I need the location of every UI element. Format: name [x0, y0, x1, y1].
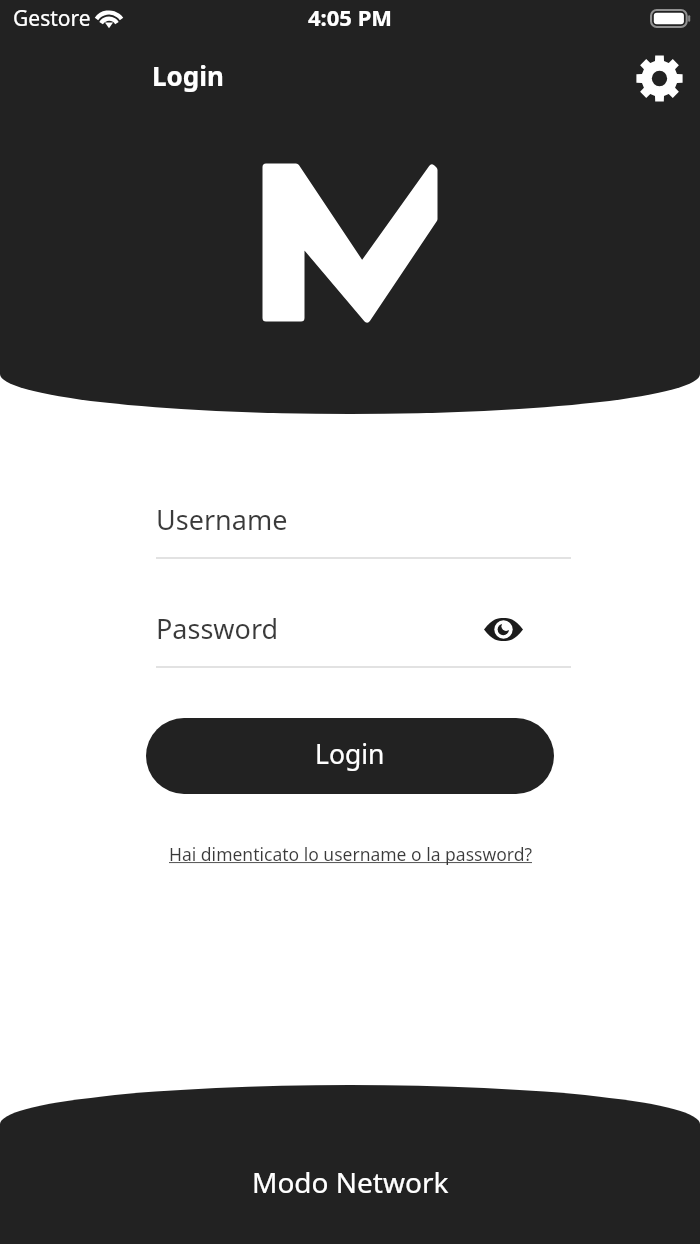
button[interactable]: Login	[146, 718, 554, 794]
button[interactable]: Show password	[480, 608, 526, 650]
button[interactable]: Username	[156, 500, 571, 559]
staticText: Hai dimenticato lo username o la passwor…	[169, 842, 532, 866]
staticText: Gestore	[13, 4, 91, 33]
staticText: 4:05 PM	[308, 2, 393, 32]
button[interactable]: Settings	[629, 48, 689, 108]
staticText: Login	[315, 736, 385, 772]
staticText: Login	[152, 58, 224, 93]
staticText: Username	[156, 501, 288, 538]
button[interactable]: Modo Network	[0, 1134, 700, 1244]
staticText: Modo Network	[252, 1163, 449, 1201]
button[interactable]: Password	[156, 609, 571, 668]
staticText: Password	[156, 610, 279, 647]
button[interactable]: Hai dimenticato lo username o la passwor…	[161, 836, 540, 872]
